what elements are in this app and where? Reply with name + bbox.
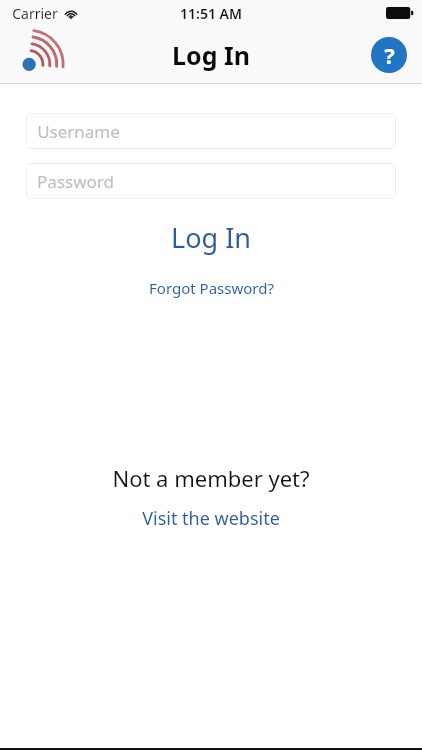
staticText: Username <box>37 120 120 143</box>
staticText: Log In <box>172 38 250 72</box>
staticText: Not a member yet? <box>112 463 310 493</box>
staticText: ? <box>384 40 395 70</box>
button[interactable]: Log In <box>0 219 422 256</box>
staticText: Password <box>37 170 114 193</box>
button[interactable]: Visit the website <box>0 506 422 531</box>
button[interactable]: Forgot Password? <box>0 278 422 298</box>
staticText: 11:51 AM <box>180 4 242 23</box>
button[interactable]: Password <box>26 163 396 199</box>
staticText: Visit the website <box>142 506 280 531</box>
button[interactable]: Username <box>26 113 396 149</box>
button[interactable]: Help <box>371 37 407 73</box>
staticText: Forgot Password? <box>149 278 274 298</box>
button[interactable]: Home <box>16 35 68 75</box>
staticText: Log In <box>171 219 251 256</box>
staticText: Carrier <box>12 4 58 23</box>
